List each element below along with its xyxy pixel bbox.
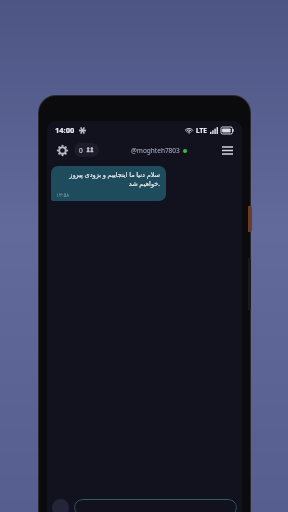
staticText: @moghteh7803	[131, 146, 180, 155]
button[interactable]	[74, 499, 237, 512]
staticText: 14:00	[55, 125, 75, 135]
staticText: ۱۳:۵۸	[56, 191, 160, 198]
button[interactable]: 0	[74, 143, 99, 157]
button[interactable]: Menu	[219, 142, 235, 158]
button[interactable]: Attach	[52, 499, 69, 512]
staticText: LTE	[196, 126, 207, 135]
button[interactable]: @moghteh7803	[131, 146, 187, 155]
button[interactable]: Settings	[54, 142, 70, 158]
button[interactable]: سلام دنیا ما اینجاییم و بزودی پیروز خواه…	[51, 166, 166, 201]
staticText: سلام دنیا ما اینجاییم و بزودی پیروز خواه…	[56, 170, 160, 188]
staticText: 0	[79, 146, 83, 155]
